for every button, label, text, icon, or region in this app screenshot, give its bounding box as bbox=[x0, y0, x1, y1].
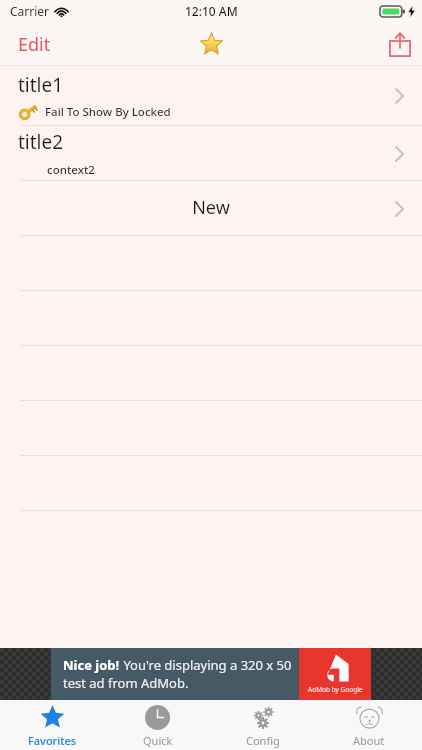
button[interactable]: title1 bbox=[0, 66, 422, 126]
staticText: About bbox=[353, 733, 385, 748]
staticText: Carrier bbox=[10, 3, 50, 19]
staticText: Edit bbox=[18, 32, 51, 57]
button[interactable]: Config bbox=[210, 700, 316, 750]
staticText: Config bbox=[246, 733, 280, 748]
staticText: Fail To Show By Locked bbox=[45, 104, 171, 120]
staticText: 12:10 AM bbox=[185, 3, 238, 19]
staticText: title1 bbox=[18, 72, 64, 98]
button[interactable]: title2 bbox=[0, 126, 422, 181]
button[interactable]: About bbox=[316, 700, 422, 750]
staticText: test ad from AdMob. bbox=[63, 674, 189, 692]
staticText: Quick bbox=[143, 733, 173, 748]
button[interactable]: Favorites star bbox=[189, 22, 233, 66]
button[interactable]: Share bbox=[378, 22, 422, 66]
button[interactable]: Favorites bbox=[0, 700, 105, 750]
staticText: title2 bbox=[18, 129, 64, 155]
button[interactable]: Quick bbox=[105, 700, 210, 750]
staticText: AdMob by Google bbox=[308, 685, 363, 694]
button[interactable]: Nice job! bbox=[0, 648, 422, 700]
button[interactable]: New bbox=[0, 181, 422, 236]
staticText: context2 bbox=[47, 162, 95, 178]
staticText: New bbox=[192, 195, 230, 220]
button[interactable]: Edit bbox=[0, 22, 69, 66]
staticText: Favorites bbox=[28, 733, 77, 748]
staticText: Nice job! bbox=[63, 656, 120, 674]
staticText: You're displaying a 320 x 50 bbox=[120, 656, 292, 674]
